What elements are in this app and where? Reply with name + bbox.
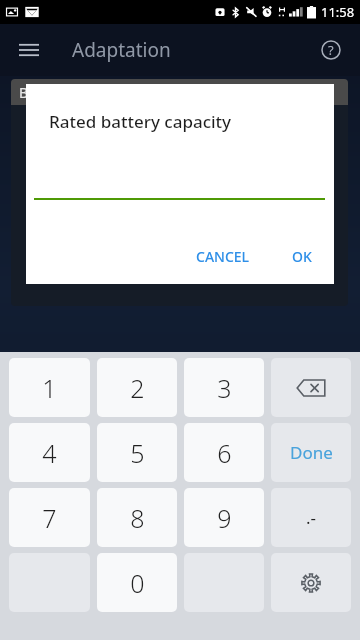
staticText: B [19, 83, 29, 102]
staticText: 4 [42, 436, 57, 470]
staticText: CANCEL [196, 247, 250, 266]
staticText: ? [328, 41, 334, 59]
button[interactable]: OK [280, 237, 324, 276]
staticText: .- [306, 506, 317, 529]
button[interactable]: 3 [184, 358, 264, 417]
button[interactable]: 1 [9, 358, 90, 417]
button[interactable]: 4 [9, 423, 90, 482]
button[interactable]: Backspace [271, 358, 351, 417]
staticText: 5 [130, 436, 145, 470]
staticText: EFB [166, 266, 194, 288]
button[interactable]: Keyboard settings [271, 553, 351, 612]
button[interactable]: 7 [9, 488, 90, 547]
button[interactable]: 0 [97, 553, 177, 612]
button[interactable]: 6 [184, 423, 264, 482]
staticText: 0 [130, 566, 145, 600]
button[interactable]: 9 [184, 488, 264, 547]
staticText: 7 [42, 501, 57, 535]
button[interactable]: CANCEL [184, 237, 262, 276]
staticText: Adaptation [72, 37, 171, 63]
staticText: OK [292, 247, 312, 266]
button[interactable]: Done [271, 423, 351, 482]
button[interactable]: Dot and minus [271, 488, 351, 547]
button[interactable]: 8 [97, 488, 177, 547]
staticText: Done [290, 441, 333, 464]
button[interactable]: Help [310, 29, 352, 71]
staticText: 11:58 [321, 3, 355, 21]
staticText: 3 [217, 371, 232, 405]
staticText: 1 [42, 371, 57, 405]
button[interactable]: Open navigation drawer [8, 29, 50, 71]
staticText: 6 [217, 436, 232, 470]
button[interactable]: 5 [97, 423, 177, 482]
staticText: 2 [130, 371, 145, 405]
button[interactable]: 2 [97, 358, 177, 417]
staticText: Rated battery capacity [49, 110, 232, 133]
staticText: 8 [130, 501, 145, 535]
staticText: 9 [217, 501, 232, 535]
